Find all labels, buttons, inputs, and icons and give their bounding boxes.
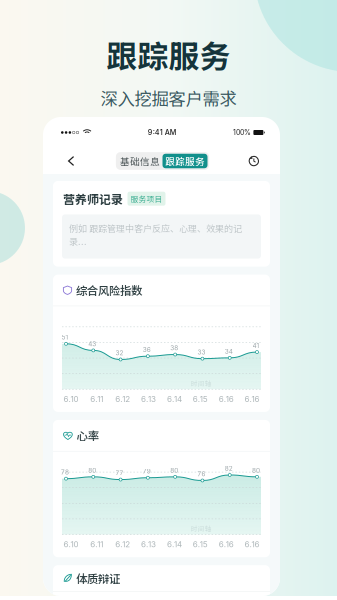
staticText: 80 [170, 466, 178, 474]
staticText: 体质辩证 [76, 570, 120, 586]
staticText: 综合风险指数 [76, 282, 142, 298]
button[interactable]: 跟踪服务 [162, 154, 207, 168]
staticText: 跟踪服务 [165, 154, 205, 168]
staticText: 跟踪服务 [106, 32, 230, 76]
staticText: 6.11 [90, 539, 103, 549]
staticText: 6.10 [63, 394, 78, 404]
staticText: 时间轴 [191, 524, 212, 533]
staticText: 6.10 [63, 539, 78, 549]
staticText: 服务项目 [130, 193, 162, 204]
staticText: 6.15 [193, 394, 208, 404]
staticText: 9:41 AM [148, 128, 177, 137]
staticText: 78 [61, 468, 69, 476]
staticText: 82 [225, 465, 233, 472]
staticText: 6.12 [115, 394, 130, 404]
staticText: 6.16 [245, 539, 260, 549]
staticText: 6.12 [115, 539, 130, 549]
staticText: 时间轴 [191, 378, 212, 388]
button[interactable]: Back [61, 151, 81, 171]
staticText: 51 [61, 333, 68, 341]
staticText: 6.16 [245, 394, 260, 404]
button[interactable]: 基础信息 [117, 154, 162, 168]
staticText: 76 [197, 470, 205, 478]
staticText: 41 [252, 342, 259, 349]
staticText: 6.14 [167, 539, 182, 549]
staticText: 38 [170, 344, 178, 352]
staticText: 79 [143, 467, 151, 475]
staticText: 6.11 [90, 394, 103, 404]
staticText: 基础信息 [120, 154, 160, 168]
staticText: 100% [233, 128, 251, 137]
staticText: 例如 跟踪管理中客户反应、心理、效果的记录... [69, 221, 242, 248]
staticText: 深入挖掘客户需求 [100, 85, 236, 110]
staticText: 心率 [77, 427, 99, 444]
staticText: 6.13 [141, 539, 156, 549]
staticText: 6.16 [219, 539, 234, 549]
staticText: 6.16 [219, 394, 234, 404]
staticText: 32 [116, 349, 124, 357]
staticText: 33 [197, 348, 205, 356]
staticText: 43 [88, 340, 96, 348]
staticText: 营养师记录 [63, 190, 123, 207]
button[interactable]: History [244, 151, 264, 171]
staticText: 80 [252, 466, 260, 474]
staticText: 6.14 [167, 394, 182, 404]
staticText: 6.13 [141, 394, 156, 404]
staticText: 6.15 [193, 539, 208, 549]
staticText: 36 [143, 346, 151, 353]
staticText: 80 [88, 466, 96, 474]
staticText: 77 [116, 469, 124, 477]
staticText: 34 [225, 347, 233, 355]
